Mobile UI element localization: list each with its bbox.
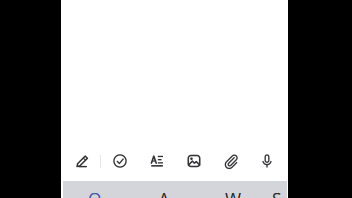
button[interactable]: Dictate	[252, 146, 282, 176]
button[interactable]: Suggestion	[81, 191, 109, 198]
staticText: S	[272, 187, 282, 198]
staticText: O	[88, 187, 102, 198]
staticText: A	[158, 187, 169, 198]
button[interactable]: Mark complete	[105, 146, 135, 176]
button[interactable]: Suggestion	[263, 191, 291, 198]
button[interactable]: Draw	[68, 146, 98, 176]
button[interactable]: Suggestion	[150, 191, 178, 198]
button[interactable]: Suggestion	[219, 191, 247, 198]
button[interactable]: Insert photo	[179, 146, 209, 176]
button[interactable]: Attach file	[216, 146, 246, 176]
staticText: W	[225, 187, 241, 198]
button[interactable]: Format text	[142, 146, 172, 176]
